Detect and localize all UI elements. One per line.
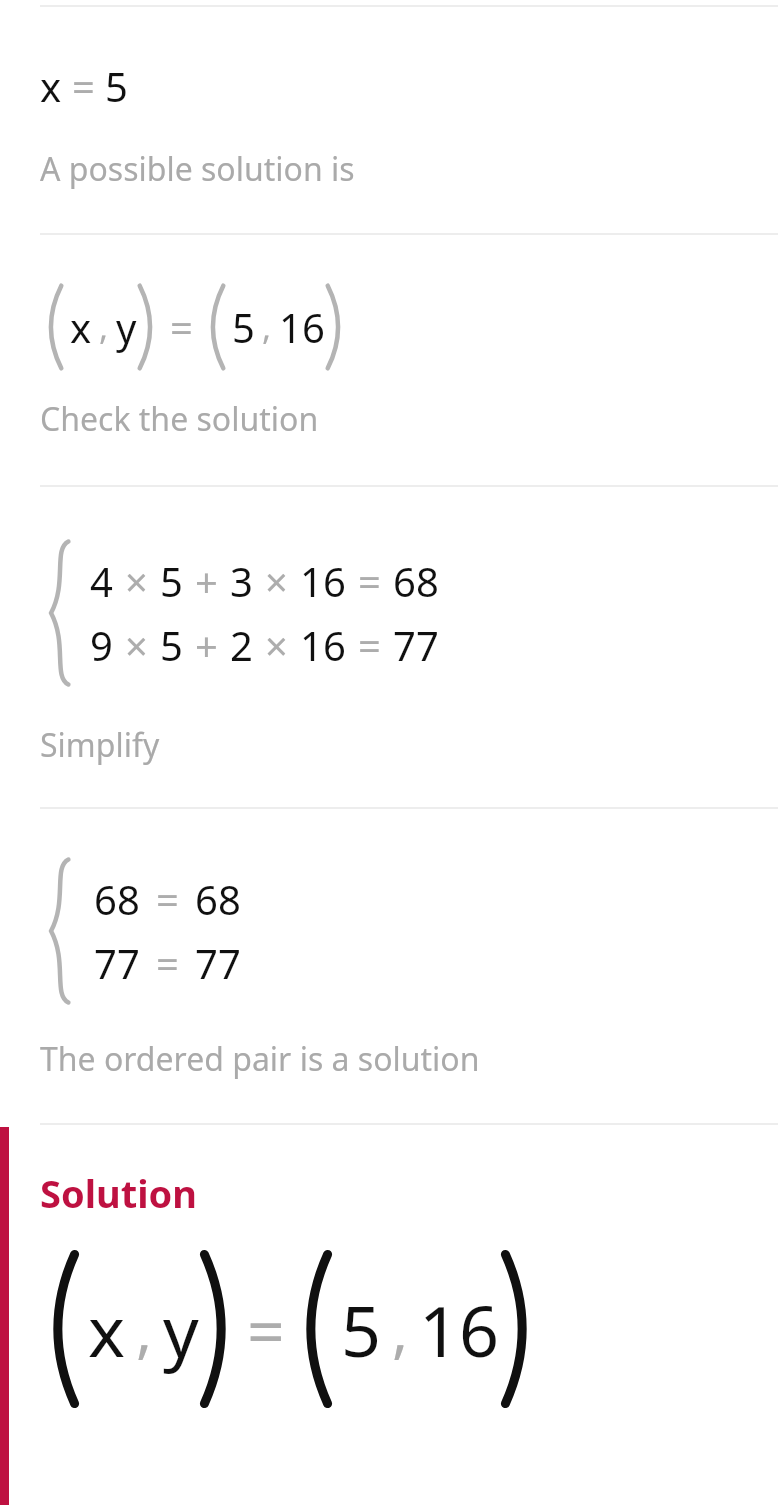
staticText: , (99, 304, 109, 350)
staticText: 16 (300, 618, 346, 672)
staticText: × (125, 618, 148, 672)
staticText: = (247, 1284, 285, 1374)
staticText: 68 (195, 872, 241, 926)
staticText: 77 (393, 618, 439, 672)
staticText: 68 (94, 872, 140, 926)
staticText: + (195, 618, 218, 672)
staticText: 16 (300, 554, 346, 608)
staticText: 5 (105, 59, 128, 113)
staticText: = (358, 554, 381, 608)
button[interactable]: x (0, 59, 778, 113)
staticText: , (262, 304, 272, 350)
staticText: y (163, 1282, 199, 1377)
staticText: × (265, 618, 288, 672)
button[interactable]: x (0, 1249, 778, 1409)
button[interactable]: 4 (0, 537, 778, 689)
staticText: 9 (90, 618, 113, 672)
staticText: 5 (160, 554, 183, 608)
staticText: Simplify (40, 723, 160, 767)
staticText: 5 (160, 618, 183, 672)
staticText: 16 (279, 300, 325, 354)
staticText: 77 (94, 936, 140, 990)
staticText: x (40, 59, 62, 113)
button[interactable]: x (0, 283, 778, 371)
staticText: + (195, 554, 218, 608)
staticText: = (156, 872, 179, 926)
staticText: A possible solution is (40, 147, 355, 191)
staticText: 68 (393, 554, 439, 608)
staticText: 77 (195, 936, 241, 990)
staticText: = (156, 936, 179, 990)
staticText: = (72, 59, 95, 113)
staticText: , (136, 1288, 153, 1370)
staticText: , (392, 1288, 409, 1370)
staticText: 2 (230, 618, 253, 672)
staticText: × (265, 554, 288, 608)
staticText: The ordered pair is a solution (40, 1037, 480, 1081)
staticText: y (116, 300, 137, 354)
staticText: 3 (230, 554, 253, 608)
staticText: x (70, 300, 92, 354)
staticText: 16 (419, 1282, 500, 1377)
staticText: = (358, 618, 381, 672)
staticText: = (170, 300, 193, 354)
staticText: Check the solution (40, 397, 319, 441)
staticText: × (125, 554, 148, 608)
staticText: 5 (341, 1282, 382, 1377)
staticText: 5 (232, 300, 255, 354)
staticText: 4 (90, 554, 113, 608)
staticText: Solution (40, 1167, 198, 1219)
staticText: x (88, 1282, 126, 1377)
button[interactable]: 68 (0, 855, 778, 1007)
